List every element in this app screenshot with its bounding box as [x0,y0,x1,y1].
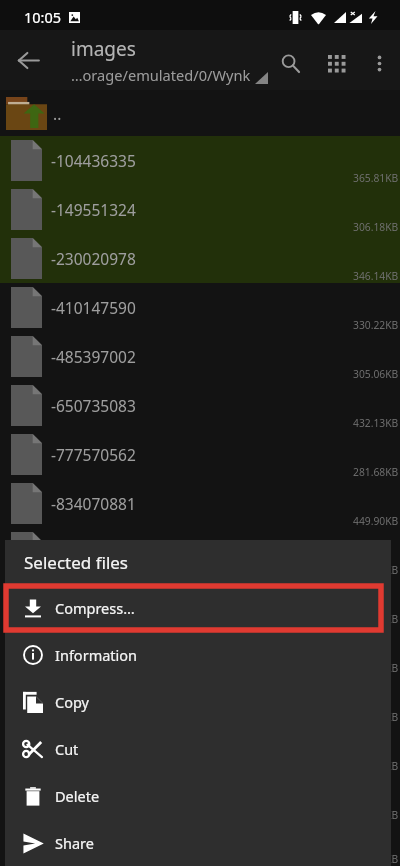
button[interactable]: -934567812 [0,626,400,675]
staticText: -485397002 [51,346,136,367]
button[interactable]: -650735083 [0,381,400,430]
button[interactable]: -410147590 [0,283,400,332]
button[interactable]: -485397002 [0,332,400,381]
button[interactable]: -101010101 [0,773,400,822]
button[interactable]: -777570562 [0,430,400,479]
staticText: -912345678 [51,591,136,612]
staticText: 380.35KB [353,563,399,577]
staticText: -934567812 [51,640,136,661]
staticText: 350.66KB [353,852,399,866]
staticText: -101010101 [51,787,136,808]
staticText: 340.28KB [353,808,399,822]
button[interactable]: Delete [5,772,391,819]
staticText: 330.22KB [353,318,399,332]
staticText: 449.90KB [353,514,399,528]
staticText: Cut [55,739,79,759]
staticText: 306.18KB [353,220,399,234]
staticText: Selected files [24,551,129,574]
button[interactable]: Compress… [5,584,391,631]
button[interactable]: Back [6,38,50,82]
button[interactable]: -149551324 [0,185,400,234]
button[interactable]: Copy [5,678,391,725]
button[interactable]: -998877665 [0,724,400,773]
staticText: 365.81KB [353,171,399,185]
staticText: -121212121 [51,834,136,855]
staticText: Compress… [55,598,135,618]
button[interactable]: Information [5,631,391,678]
staticText: 10:05 [24,7,62,27]
button[interactable]: -104436335 [0,136,400,185]
button[interactable]: -230020978 [0,234,400,283]
staticText: .. [53,103,62,124]
staticText: -230020978 [51,248,136,269]
button[interactable]: More options [359,43,399,83]
staticText: 432.13KB [353,416,399,430]
button[interactable]: -978451236 [0,675,400,724]
staticText: -410147590 [51,297,136,318]
staticText: 346.14KB [353,269,399,283]
button[interactable]: -912345678 [0,577,400,626]
button[interactable]: -121212121 [0,822,400,866]
button[interactable]: Cut [5,725,391,772]
staticText: 391.12KB [353,612,399,626]
staticText: 281.68KB [353,465,399,479]
staticText: images [71,36,136,62]
staticText: Delete [55,786,100,806]
staticText: -650735083 [51,395,136,416]
button[interactable]: Search [267,40,313,86]
staticText: 410.73KB [353,710,399,724]
staticText: -841052123 [51,542,136,563]
staticText: Information [55,645,138,665]
staticText: -998877665 [51,738,136,759]
staticText: -149551324 [51,199,136,220]
staticText: -104436335 [51,150,136,171]
staticText: …orage/emulated/0/Wynk [71,65,251,85]
staticText: 305.06KB [353,367,399,381]
staticText: -777570562 [51,444,136,465]
staticText: 360.91KB [353,759,399,773]
staticText: Share [55,833,94,853]
button[interactable]: -841052123 [0,528,400,577]
button[interactable]: Share [5,819,391,866]
staticText: -834070881 [51,493,136,514]
button[interactable]: -834070881 [0,479,400,528]
staticText: 300.44KB [353,661,399,675]
button[interactable]: .. [0,90,400,136]
staticText: Copy [55,692,89,712]
button[interactable]: Grid view [313,40,359,86]
staticText: -978451236 [51,689,136,710]
